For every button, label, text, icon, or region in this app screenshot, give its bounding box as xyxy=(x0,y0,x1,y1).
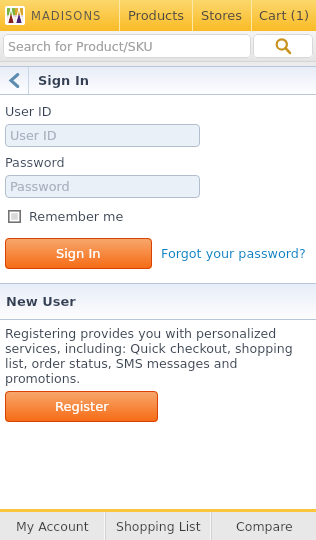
button[interactable]: User ID xyxy=(5,124,200,147)
button[interactable]: Products xyxy=(120,0,192,31)
staticText: Register xyxy=(55,399,109,414)
staticText: Stores xyxy=(201,8,243,23)
staticText: Sign In xyxy=(56,246,101,261)
button[interactable]: Remember me xyxy=(8,209,124,224)
staticText: MADISONS xyxy=(31,9,102,22)
staticText: Search for Product/SKU xyxy=(8,39,153,54)
button[interactable]: MADISONS xyxy=(0,0,119,31)
button[interactable]: Sign In xyxy=(5,238,152,269)
staticText: Compare xyxy=(236,519,293,534)
staticText: New User xyxy=(6,294,76,309)
button[interactable]: Shopping List xyxy=(106,512,210,540)
staticText: User ID xyxy=(5,104,52,119)
staticText: My Account xyxy=(16,519,89,534)
button[interactable]: Stores xyxy=(193,0,251,31)
button[interactable]: Register xyxy=(5,391,158,422)
button[interactable]: Compare xyxy=(212,512,316,540)
button[interactable]: My Account xyxy=(0,512,104,540)
button[interactable]: Password xyxy=(5,175,200,198)
button[interactable]: Forgot your password? xyxy=(161,246,306,261)
staticText: Remember me xyxy=(29,209,124,224)
staticText: Shopping List xyxy=(116,519,201,534)
staticText: Cart (1) xyxy=(259,8,310,23)
staticText: Sign In xyxy=(38,73,89,88)
button[interactable]: Cart (1) xyxy=(252,0,316,31)
button[interactable]: Back xyxy=(0,67,28,94)
staticText: Products xyxy=(128,8,185,23)
button[interactable]: Search xyxy=(253,34,313,58)
staticText: User ID xyxy=(10,128,57,143)
button[interactable]: Search for Product/SKU xyxy=(3,34,251,58)
staticText: Registering provides you with personaliz… xyxy=(5,326,302,386)
staticText: Password xyxy=(10,179,70,194)
staticText: Password xyxy=(5,155,65,170)
